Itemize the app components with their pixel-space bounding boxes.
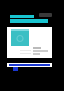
button[interactable]: Menu	[39, 13, 52, 17]
